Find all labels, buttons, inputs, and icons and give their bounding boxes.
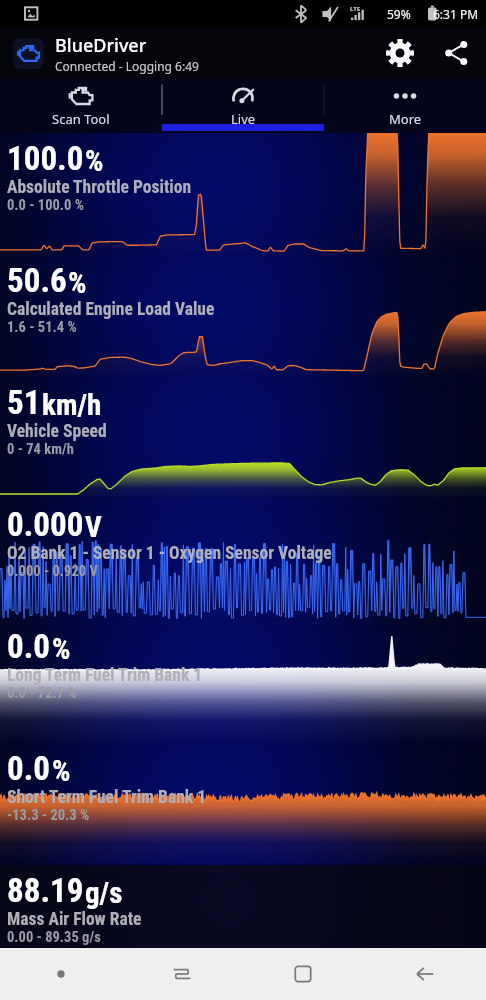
staticText: LTE xyxy=(350,5,361,13)
staticText: 0.000 - 0.920 V xyxy=(7,563,98,580)
staticText: 0 - 74 km/h xyxy=(7,441,74,458)
button[interactable]: Home xyxy=(242,948,364,1000)
button[interactable]: Recent apps xyxy=(121,948,242,1000)
staticText: 51 xyxy=(7,383,41,422)
staticText: 59% xyxy=(387,6,411,22)
button[interactable]: Menu xyxy=(0,948,121,1000)
staticText: BlueDriver xyxy=(55,33,147,58)
staticText: Long Term Fuel Trim Bank 1 xyxy=(7,665,203,686)
staticText: 0.00 - 89.35 g/s xyxy=(7,929,101,946)
staticText: 50.6 xyxy=(7,261,67,300)
staticText: O2 Bank 1 - Sensor 1 - Oxygen Sensor Vol… xyxy=(7,543,332,564)
button[interactable]: Share xyxy=(428,27,484,79)
staticText: 0.0 - 100.0 % xyxy=(7,197,85,214)
staticText: g/s xyxy=(85,876,123,910)
staticText: Calculated Engine Load Value xyxy=(7,299,215,320)
button[interactable]: 0.0 xyxy=(0,621,486,743)
staticText: 100.0 xyxy=(7,139,84,178)
staticText: % xyxy=(52,754,71,788)
staticText: 0.0 xyxy=(7,749,51,788)
staticText: 0.0 - 72.7 % xyxy=(7,685,77,702)
staticText: km/h xyxy=(42,388,102,422)
staticText: Absolute Throttle Position xyxy=(7,177,192,198)
button[interactable]: 88.19 xyxy=(0,865,486,948)
button[interactable]: Scan Tool xyxy=(0,79,162,133)
staticText: 88.19 xyxy=(7,871,84,910)
staticText: Short Term Fuel Trim Bank 1 xyxy=(7,787,207,808)
staticText: More xyxy=(389,110,422,128)
staticText: Live xyxy=(231,110,256,128)
button[interactable]: Live xyxy=(162,79,324,133)
button[interactable]: 51 xyxy=(0,377,486,499)
button[interactable]: Settings xyxy=(372,27,428,79)
button[interactable]: 0.0 xyxy=(0,743,486,865)
staticText: 6:31 PM xyxy=(433,6,479,22)
staticText: % xyxy=(68,266,87,300)
staticText: Scan Tool xyxy=(52,110,110,128)
button[interactable]: 0.000 xyxy=(0,499,486,621)
button[interactable]: Back xyxy=(364,948,486,1000)
button[interactable]: More xyxy=(324,79,486,133)
staticText: 1.6 - 51.4 % xyxy=(7,319,77,336)
staticText: 0.0 xyxy=(7,627,51,666)
staticText: % xyxy=(52,632,71,666)
staticText: Vehicle Speed xyxy=(7,421,107,442)
button[interactable]: 50.6 xyxy=(0,255,486,377)
staticText: Mass Air Flow Rate xyxy=(7,909,142,930)
staticText: % xyxy=(85,144,104,178)
staticText: Connected - Logging 6:49 xyxy=(55,58,199,74)
staticText: V xyxy=(85,510,102,544)
staticText: -13.3 - 20.3 % xyxy=(7,807,90,824)
staticText: 0.000 xyxy=(7,505,84,544)
button[interactable]: 100.0 xyxy=(0,133,486,255)
